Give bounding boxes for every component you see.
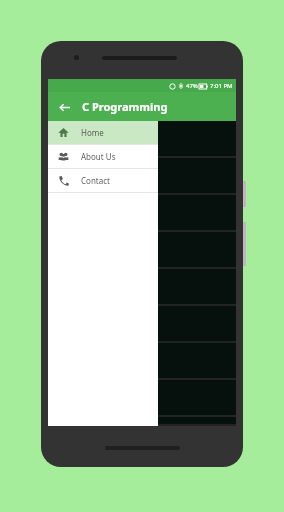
button[interactable]: Functions	[48, 269, 236, 306]
staticText: 7:01 PM	[210, 82, 233, 90]
button[interactable]: Home	[48, 121, 158, 144]
button[interactable]: Operation	[48, 195, 236, 232]
button[interactable]: Contact	[48, 169, 158, 192]
button[interactable]: Classes	[48, 158, 236, 195]
staticText: Home	[81, 127, 104, 138]
staticText: 47%	[186, 82, 198, 90]
button[interactable]: Strings	[48, 380, 236, 417]
button[interactable]: Arrays	[48, 343, 236, 380]
staticText: About Us	[81, 151, 116, 162]
button[interactable]: Structures	[48, 417, 236, 426]
button[interactable]: About Us	[48, 145, 158, 168]
button[interactable]: Introduction	[48, 121, 236, 158]
staticText: Classes	[62, 169, 100, 184]
staticText: Contact	[81, 175, 110, 186]
button[interactable]: Variables	[48, 232, 236, 269]
staticText: C Programming	[82, 99, 168, 114]
staticText: Introduction	[62, 132, 127, 147]
button[interactable]: Pointers	[48, 306, 236, 343]
button[interactable]: Back	[53, 96, 75, 118]
